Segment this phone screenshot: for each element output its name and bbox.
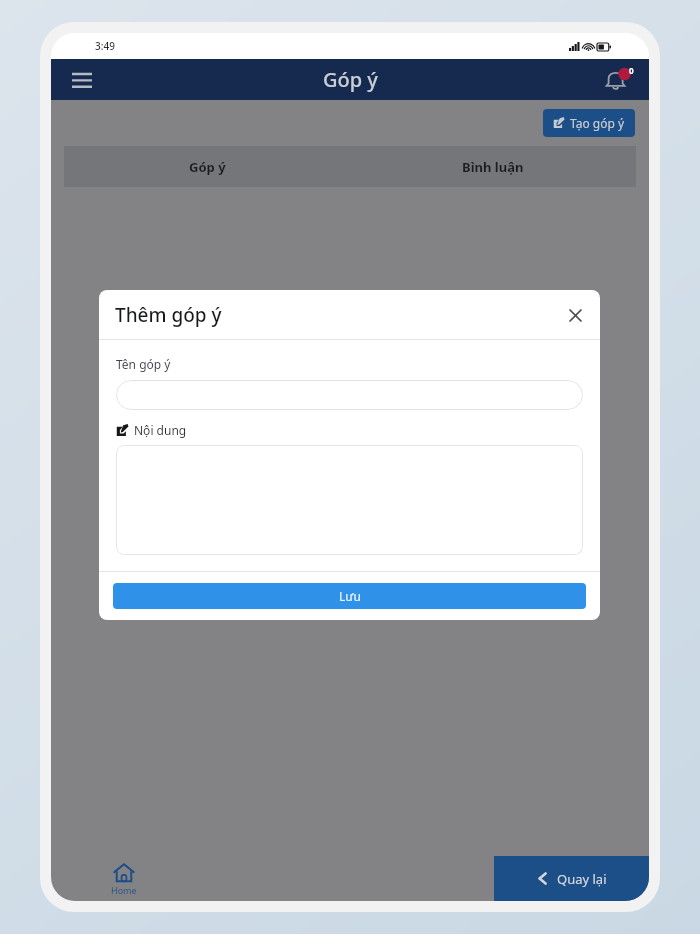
button[interactable] — [116, 380, 583, 410]
staticText: Nội dung — [134, 422, 187, 438]
staticText: Góp ý — [189, 158, 226, 176]
button[interactable] — [116, 445, 583, 555]
staticText: 0 — [629, 65, 634, 76]
button[interactable]: Tạo góp ý — [543, 109, 635, 137]
button[interactable]: Quay lại — [494, 856, 649, 901]
staticText: Home — [111, 884, 137, 896]
staticText: Tên góp ý — [116, 356, 171, 372]
button[interactable]: Close — [562, 302, 588, 328]
staticText: Bình luận — [462, 158, 524, 176]
staticText: 3:49 — [95, 39, 115, 53]
staticText: Thêm góp ý — [115, 302, 222, 328]
button[interactable]: Menu — [63, 61, 101, 99]
staticText: Quay lại — [557, 870, 607, 888]
staticText: Góp ý — [323, 66, 378, 93]
button[interactable]: Lưu — [113, 583, 586, 609]
staticText: Lưu — [339, 588, 361, 604]
button[interactable]: Home — [105, 859, 143, 899]
staticText: Tạo góp ý — [570, 115, 625, 131]
button[interactable]: Notifications — [599, 61, 637, 99]
